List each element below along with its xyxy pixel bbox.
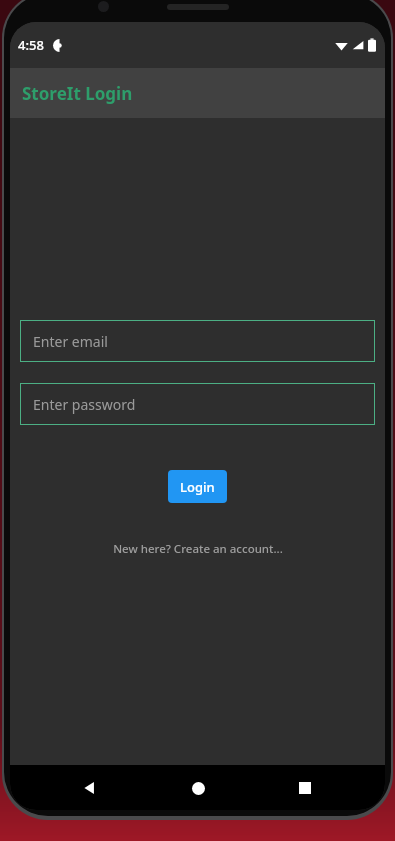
button[interactable]: Back	[68, 766, 112, 810]
staticText: Enter password	[33, 395, 136, 414]
button[interactable]: Login	[168, 470, 227, 503]
staticText: 4:58	[18, 36, 44, 54]
staticText: Login	[180, 478, 215, 496]
button[interactable]: Home	[176, 766, 220, 810]
button[interactable]: Enter password	[20, 383, 375, 425]
staticText: StoreIt Login	[22, 82, 133, 105]
button[interactable]: Enter email	[20, 320, 375, 362]
staticText: Enter email	[33, 332, 108, 351]
staticText: New here? Create an account...	[113, 541, 283, 557]
button[interactable]: New here? Create an account...	[113, 541, 283, 557]
button[interactable]: Recent apps	[283, 766, 327, 810]
